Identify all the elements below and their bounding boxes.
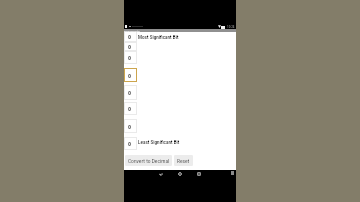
button[interactable]: 0 (124, 85, 137, 100)
button[interactable]: 0 (124, 137, 137, 150)
button[interactable]: 0 (124, 119, 137, 133)
staticText: Most Significant Bit (138, 34, 179, 40)
staticText: 0 (128, 33, 132, 40)
button[interactable]: Recent apps (194, 169, 204, 179)
staticText: 0 (128, 54, 132, 61)
staticText: Convert to Decimal (128, 158, 170, 164)
button[interactable]: 0 (124, 41, 137, 51)
staticText: Least Significant Bit (138, 139, 180, 145)
staticText: Reset (177, 158, 190, 164)
staticText: 0 (128, 72, 132, 79)
staticText: 0 (128, 123, 132, 130)
staticText: 10:24 (227, 25, 235, 29)
staticText: 0 (128, 43, 132, 50)
staticText: 0 (128, 89, 132, 96)
staticText: 0 (128, 105, 132, 112)
button[interactable]: Back (156, 169, 166, 179)
button[interactable]: Convert to Decimal (125, 155, 172, 166)
staticText: 0 (128, 140, 132, 147)
button[interactable]: 0 (124, 32, 137, 43)
button[interactable]: Reset (174, 155, 193, 166)
button[interactable]: 0 (124, 68, 137, 82)
button[interactable]: Home (175, 169, 185, 179)
button[interactable]: 0 (124, 102, 137, 115)
button[interactable]: 0 (124, 51, 137, 64)
staticText: BinaryConverter (124, 30, 140, 33)
